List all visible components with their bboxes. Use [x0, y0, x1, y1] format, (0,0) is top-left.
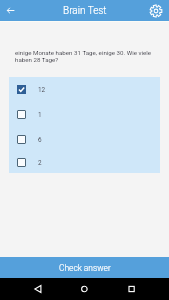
button[interactable]: Check answer [0, 257, 169, 278]
staticText: Check answer [59, 263, 111, 273]
button[interactable]: 1 [9, 102, 160, 127]
button[interactable]: 6 [9, 127, 160, 152]
button[interactable]: Settings [150, 5, 162, 17]
button[interactable]: Back [3, 3, 18, 18]
staticText: 1 [38, 111, 42, 119]
button[interactable]: 12 [9, 77, 160, 102]
staticText: Brain Test [63, 5, 107, 17]
staticText: 6 [38, 136, 42, 144]
staticText: einige Monate haben 31 Tage, einige 30. … [15, 49, 155, 64]
button[interactable]: 2 [9, 152, 160, 173]
staticText: 12 [38, 86, 46, 94]
staticText: 2 [38, 159, 42, 167]
